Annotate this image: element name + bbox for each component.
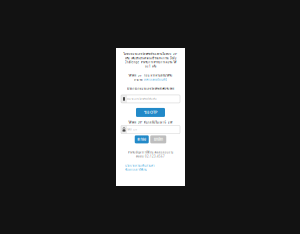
button[interactable]: ตกลง (135, 135, 149, 143)
staticText: คลิกลงทะเบียนที่นี่ (144, 78, 167, 82)
staticText: ข้อตกลงการใช้งาน (125, 168, 147, 172)
staticText: หรือ เพื่อยืนยันตัวตนเข้าร่วมกิจกรรม Dai… (125, 56, 176, 60)
staticText: ติดต่อ 02-123-4567 (136, 154, 165, 159)
staticText: Challenge สำหรับการ ทำรายการ ต่อวัน ได้ (124, 60, 176, 64)
staticText: ขอ OTP (144, 109, 157, 115)
staticText: รหัส OTP (127, 127, 138, 132)
staticText: สามารถ (134, 78, 143, 82)
staticText: นโยบายความเป็นส่วนตัว (125, 164, 154, 168)
staticText: โปรดกรอกหมายเลขโทรศัพท์เพื่อรับรหัส (126, 87, 174, 91)
staticText: ได้รหัส OTP ก่อน หากท่านยังไม่ได้รับ (128, 73, 172, 78)
staticText: ไม่พบหมายเลขโทรศัพท์ของท่านในระบบ OTP (123, 52, 177, 56)
button[interactable]: ขอ OTP (136, 108, 165, 117)
staticText: หมายเลขโทรศัพท์มือถือ (127, 97, 157, 101)
staticText: สำหรับปัญหาการใช้งาน ติดต่อสอบถาม (127, 150, 173, 154)
button[interactable]: ข้อตกลงการใช้งาน (125, 168, 176, 172)
staticText: ตกลง (137, 136, 146, 142)
button[interactable]: ยกเลิก (150, 135, 166, 143)
staticText: ยกเลิก (154, 136, 163, 142)
button[interactable]: คลิกลงทะเบียนที่นี่ (144, 78, 167, 82)
staticText: ได้รหัส OTP ที่ถูกส่งไปในเวลา 6 นาที (128, 120, 172, 124)
button[interactable]: นโยบายความเป็นส่วนตัว (125, 164, 176, 168)
staticText: ละ 1 ครั้ง (145, 64, 156, 68)
